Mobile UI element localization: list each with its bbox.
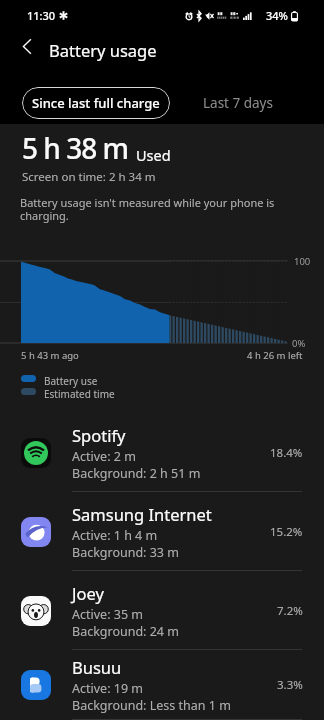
staticText: Background: 24 m — [72, 623, 179, 640]
button[interactable]: Navigate up — [10, 29, 44, 63]
staticText: Active: 19 m — [72, 680, 143, 697]
button[interactable]: Samsung Internet — [0, 492, 324, 571]
staticText: Background: 2 h 51 m — [72, 465, 201, 482]
staticText: Battery usage isn't measured while your … — [20, 195, 290, 223]
staticText: 3.3% — [277, 677, 303, 693]
staticText: Busuu — [72, 656, 122, 678]
staticText: Active: 2 m — [72, 448, 136, 465]
staticText: Last 7 days — [203, 94, 273, 112]
staticText: 15.2% — [270, 524, 303, 540]
staticText: 11:30 — [27, 8, 56, 23]
staticText: Spotify — [72, 424, 126, 446]
staticText: Background: Less than 1 m — [72, 697, 231, 714]
staticText: 0% — [292, 337, 306, 350]
button[interactable]: Busuu — [0, 650, 324, 720]
staticText: Battery use — [44, 374, 98, 388]
staticText: 5 h 43 m ago — [21, 349, 79, 362]
staticText: Estimated time — [44, 387, 115, 401]
staticText: 4 h 26 m left — [247, 349, 303, 362]
button[interactable]: Last 7 days — [170, 87, 287, 119]
staticText: Samsung Internet — [72, 503, 212, 525]
staticText: Joey — [72, 582, 104, 604]
staticText: 7.2% — [277, 603, 303, 619]
staticText: Battery usage — [49, 39, 157, 61]
staticText: Active: 1 h 4 m — [72, 527, 158, 544]
staticText: 18.4% — [270, 445, 303, 461]
staticText: Used — [136, 145, 171, 165]
staticText: Active: 35 m — [72, 606, 143, 623]
staticText: 100 — [294, 255, 311, 268]
staticText: Screen on time: 2 h 34 m — [22, 169, 156, 185]
staticText: 34% — [266, 8, 288, 23]
staticText: Background: 33 m — [72, 544, 179, 561]
staticText: 5 h 38 m — [22, 129, 129, 167]
button[interactable]: Joey — [0, 571, 324, 650]
button[interactable]: Spotify — [0, 413, 324, 492]
button[interactable]: Since last full charge — [22, 87, 170, 119]
staticText: Since last full charge — [32, 94, 160, 112]
